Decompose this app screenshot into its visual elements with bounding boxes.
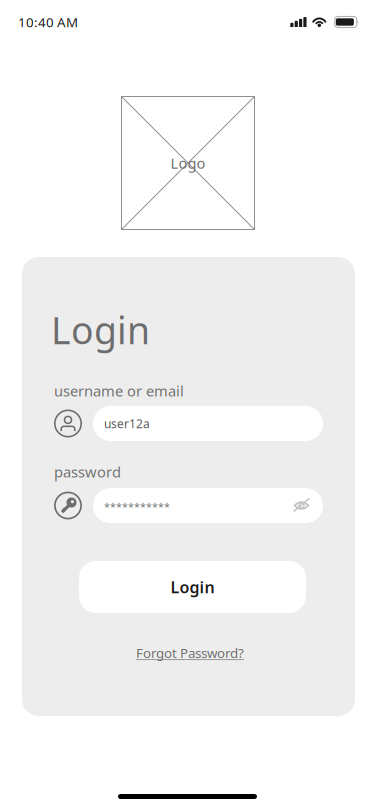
button[interactable]: user12a (93, 406, 323, 441)
staticText: 10:40 AM (18, 13, 78, 31)
button[interactable]: *********** (93, 488, 323, 523)
staticText: user12a (104, 415, 150, 431)
staticText: username or email (54, 381, 184, 400)
staticText: Forgot Password? (136, 644, 244, 662)
staticText: Logo (170, 153, 205, 173)
staticText: *********** (104, 499, 170, 514)
staticText: password (54, 462, 121, 481)
button[interactable]: Login (79, 561, 306, 613)
button[interactable]: Forgot Password? (136, 644, 244, 662)
staticText: Login (170, 576, 214, 598)
staticText: Login (51, 305, 150, 355)
